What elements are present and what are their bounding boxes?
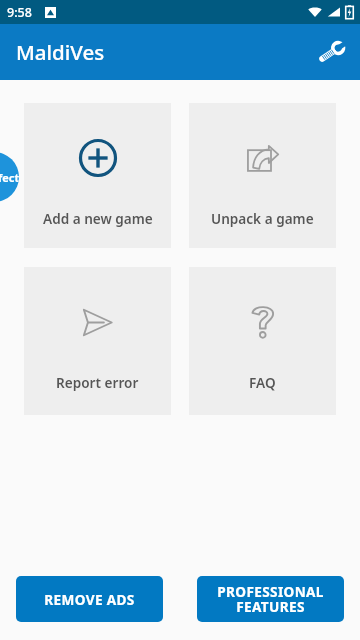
staticText: REMOVE ADS bbox=[44, 590, 135, 609]
button[interactable]: Unpack a game bbox=[189, 103, 336, 248]
staticText: fect bbox=[0, 170, 19, 185]
staticText: 9:58 bbox=[7, 4, 32, 21]
staticText: Unpack a game bbox=[211, 209, 314, 228]
staticText: Add a new game bbox=[43, 209, 153, 228]
button[interactable]: Perfect badge bbox=[0, 152, 19, 202]
staticText: FAQ bbox=[249, 373, 276, 392]
button[interactable]: REMOVE ADS bbox=[16, 576, 163, 622]
button[interactable]: Report error bbox=[24, 267, 171, 415]
button[interactable]: Settings bbox=[310, 31, 352, 73]
staticText: PROFESSIONAL FEATURES bbox=[217, 582, 324, 616]
button[interactable]: Add a new game bbox=[24, 103, 171, 248]
button[interactable]: PROFESSIONAL FEATURES bbox=[197, 576, 344, 622]
button[interactable]: FAQ bbox=[189, 267, 336, 415]
staticText: MaldiVes bbox=[16, 38, 105, 66]
staticText: Report error bbox=[56, 373, 139, 392]
